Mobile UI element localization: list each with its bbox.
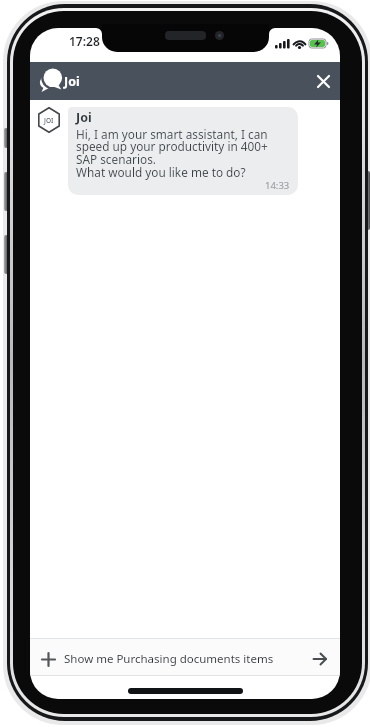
staticText: Joi xyxy=(64,73,80,90)
staticText: Show me Purchasing documents items xyxy=(64,651,274,667)
staticText: Hi, I am your smart assistant, I can spe… xyxy=(76,126,268,181)
staticText: Joi xyxy=(76,109,92,126)
button[interactable] xyxy=(312,70,334,92)
button[interactable]: Joi xyxy=(68,107,298,195)
staticText: JOI xyxy=(44,116,54,125)
button[interactable]: Show me Purchasing documents items xyxy=(30,639,340,675)
staticText: 14:33 xyxy=(265,179,290,192)
staticText: 17:28 xyxy=(69,33,100,49)
